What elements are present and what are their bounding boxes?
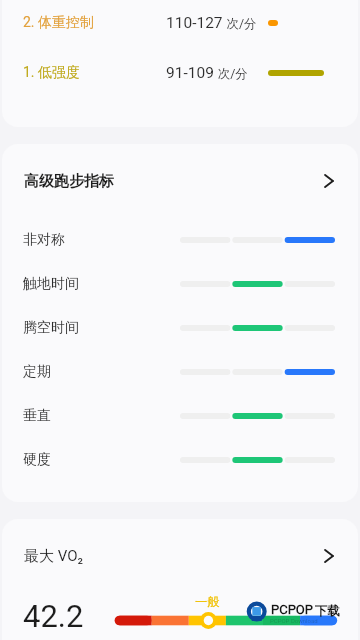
- staticText: 2. 体重控制: [23, 14, 95, 32]
- staticText: PCPOP: [271, 602, 314, 617]
- staticText: 110-127 次/分: [166, 14, 257, 32]
- button[interactable]: 最大 VO₂: [2, 519, 358, 593]
- staticText: 高级跑步指标: [24, 172, 114, 191]
- staticText: 硬度: [23, 451, 51, 469]
- other: Open details: [322, 549, 336, 563]
- staticText: 一般: [195, 594, 220, 610]
- staticText: 91-109 次/分: [166, 64, 248, 82]
- staticText: 垂直: [23, 407, 51, 425]
- button[interactable]: 高级跑步指标: [2, 144, 358, 218]
- staticText: 下载: [315, 603, 340, 619]
- staticText: 触地时间: [23, 275, 79, 293]
- staticText: 42.2: [23, 598, 84, 634]
- staticText: PCPOP Download: [270, 617, 318, 624]
- staticText: 非对称: [23, 231, 65, 249]
- staticText: 腾空时间: [23, 319, 79, 337]
- staticText: 最大 VO₂: [24, 547, 83, 566]
- staticText: 定期: [23, 363, 51, 381]
- staticText: 1. 低强度: [23, 64, 81, 82]
- other: Open details: [322, 174, 336, 188]
